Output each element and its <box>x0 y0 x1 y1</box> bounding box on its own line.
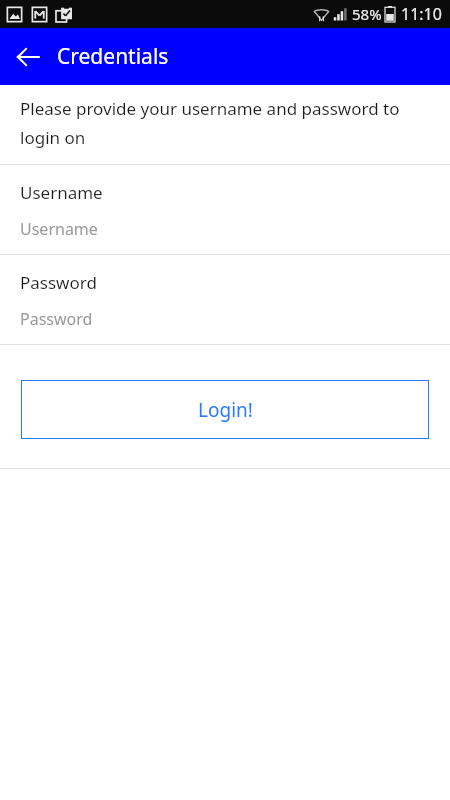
staticText: Password <box>20 308 93 330</box>
staticText: Login! <box>198 397 253 423</box>
staticText: Password <box>20 271 97 294</box>
staticText: Please provide your username and passwor… <box>20 97 428 149</box>
button[interactable]: Username <box>0 165 450 254</box>
button[interactable]: Back <box>6 35 50 79</box>
staticText: Username <box>20 218 98 240</box>
button[interactable]: Login! <box>21 380 429 439</box>
staticText: 58% <box>352 4 382 24</box>
staticText: Username <box>20 181 103 204</box>
staticText: 11:10 <box>401 3 442 25</box>
staticText: Credentials <box>57 42 169 71</box>
button[interactable]: Password <box>0 255 450 344</box>
